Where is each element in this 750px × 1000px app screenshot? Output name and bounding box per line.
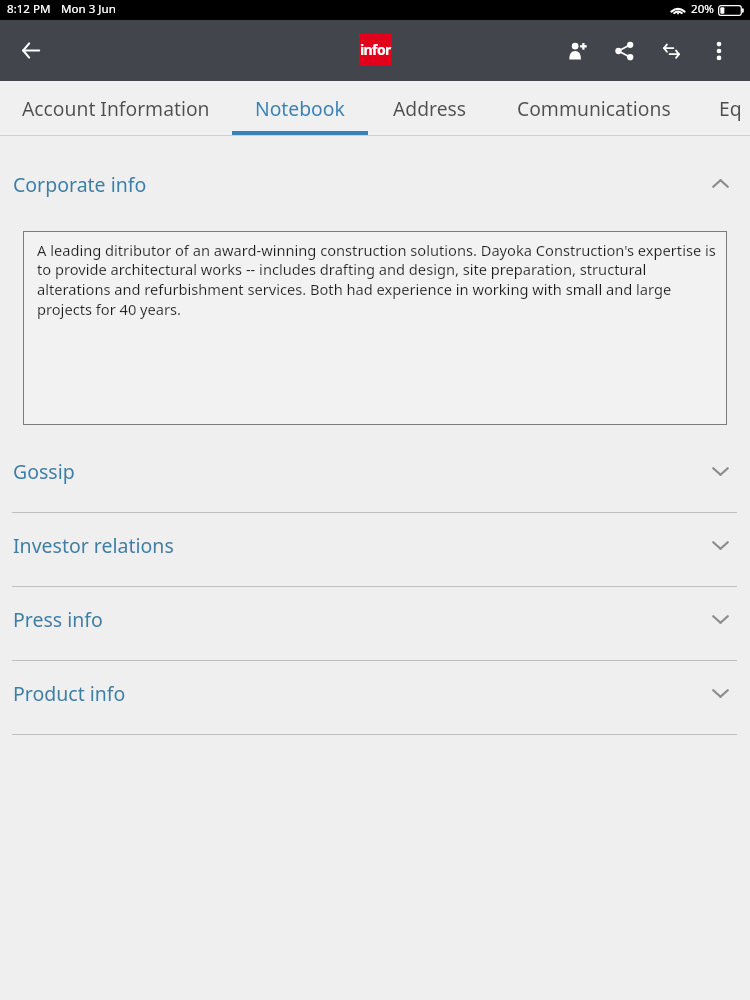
staticText: Address xyxy=(393,95,467,121)
button[interactable]: Investor relations xyxy=(0,513,750,586)
button[interactable]: Corporate info xyxy=(0,136,750,231)
button[interactable]: Equipment xyxy=(695,81,750,136)
staticText: 20% xyxy=(691,1,714,17)
staticText: Product info xyxy=(13,680,126,707)
button[interactable]: Gossip xyxy=(0,439,750,512)
staticText: Notebook xyxy=(255,95,345,121)
staticText: A leading ditributor of an award-winning… xyxy=(37,240,717,320)
staticText: Mon 3 Jun xyxy=(61,1,116,17)
staticText: Equipment xyxy=(719,95,750,121)
button[interactable]: Notebook xyxy=(232,81,368,136)
staticText: Corporate info xyxy=(13,171,147,198)
button[interactable]: Share xyxy=(601,20,648,81)
button[interactable]: Press info xyxy=(0,587,750,660)
staticText: Gossip xyxy=(13,458,75,485)
button[interactable]: Communications xyxy=(492,81,695,136)
staticText: Communications xyxy=(517,95,671,121)
staticText: Press info xyxy=(13,606,103,633)
button[interactable]: Add contact xyxy=(554,20,601,81)
button[interactable]: Product info xyxy=(0,661,750,734)
button[interactable]: Convert xyxy=(648,20,695,81)
staticText: Account Information xyxy=(22,95,210,121)
staticText: Investor relations xyxy=(13,532,174,559)
button[interactable]: Address xyxy=(368,81,492,136)
button[interactable]: Account Information xyxy=(0,81,232,136)
button[interactable]: More options xyxy=(695,20,742,81)
staticText: infor xyxy=(360,40,391,59)
button[interactable]: Navigate up xyxy=(0,20,62,81)
staticText: 8:12 PM xyxy=(7,1,51,17)
